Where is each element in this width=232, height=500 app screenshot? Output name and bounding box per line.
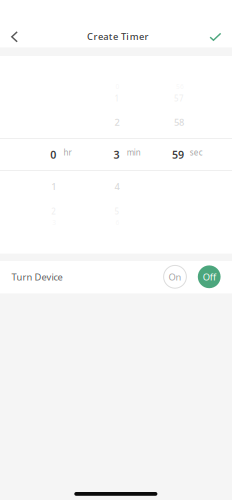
button[interactable]: Back <box>0 19 32 55</box>
staticText: 3 <box>114 147 120 162</box>
staticText: 2 <box>51 206 56 217</box>
staticText: 58 <box>174 116 184 128</box>
button[interactable]: Off <box>198 265 221 288</box>
staticText: Create Timer <box>87 30 148 43</box>
staticText: Off <box>203 271 216 283</box>
staticText: Turn Device <box>11 271 62 283</box>
staticText: 5 <box>115 206 120 217</box>
staticText: 1 <box>115 93 120 104</box>
staticText: hr <box>63 147 71 158</box>
staticText: 57 <box>174 93 184 104</box>
staticText: min <box>127 147 141 158</box>
staticText: On <box>168 271 181 283</box>
staticText: 2 <box>115 116 120 128</box>
staticText: 1 <box>51 180 56 193</box>
staticText: sec <box>190 147 203 158</box>
staticText: 0 <box>50 147 56 162</box>
button[interactable]: Confirm <box>197 19 232 55</box>
staticText: 4 <box>115 180 120 193</box>
staticText: 59 <box>172 147 184 162</box>
button[interactable]: On <box>164 265 186 288</box>
